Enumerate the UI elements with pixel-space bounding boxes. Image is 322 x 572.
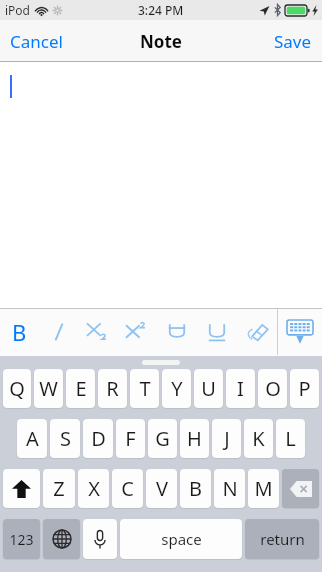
staticText: W xyxy=(39,375,58,402)
button[interactable]: 123 xyxy=(3,519,40,559)
button[interactable]: Q xyxy=(3,369,31,408)
button[interactable]: T xyxy=(130,369,159,408)
staticText: O xyxy=(265,375,281,402)
staticText: iPod xyxy=(5,2,30,18)
staticText: L xyxy=(285,425,296,452)
staticText: S xyxy=(60,425,71,452)
staticText: C xyxy=(121,475,134,502)
button[interactable]: B xyxy=(180,469,211,508)
staticText: F xyxy=(125,425,136,452)
staticText: G xyxy=(155,425,170,452)
button[interactable]: E xyxy=(66,369,95,408)
button[interactable]: Strikethrough xyxy=(157,308,197,356)
button[interactable]: O xyxy=(258,369,287,408)
button[interactable]: K xyxy=(244,419,273,458)
button[interactable]: Bold xyxy=(0,308,39,356)
staticText: B xyxy=(189,475,202,502)
staticText: H xyxy=(187,425,202,452)
staticText: K xyxy=(252,425,265,452)
button[interactable]: J xyxy=(212,419,241,458)
button[interactable]: M xyxy=(248,469,279,508)
staticText: D xyxy=(91,425,106,452)
button[interactable]: Dictate xyxy=(83,519,117,559)
button[interactable]: Erase xyxy=(237,308,277,356)
staticText: Z xyxy=(53,475,65,502)
staticText: 123 xyxy=(9,530,34,549)
button[interactable]: I xyxy=(226,369,255,408)
button[interactable]: P xyxy=(290,369,319,408)
button[interactable]: Save xyxy=(264,22,322,61)
button[interactable]: X xyxy=(78,469,109,508)
button[interactable]: Underline xyxy=(197,308,237,356)
button[interactable]: N xyxy=(214,469,245,508)
button[interactable]: D xyxy=(83,419,113,458)
button[interactable]: Cancel xyxy=(0,22,73,61)
button[interactable]: S xyxy=(50,419,80,458)
button[interactable]: W xyxy=(34,369,63,408)
button[interactable]: Italic xyxy=(39,308,78,356)
button[interactable]: Backspace xyxy=(282,469,319,508)
button[interactable]: R xyxy=(98,369,127,408)
staticText: E xyxy=(75,375,87,402)
button[interactable]: U xyxy=(194,369,223,408)
staticText: J xyxy=(224,425,230,452)
staticText: B xyxy=(12,317,27,347)
staticText: Note xyxy=(140,30,182,53)
button[interactable]: Hide keyboard xyxy=(278,310,322,354)
button[interactable]: return xyxy=(245,519,319,559)
staticText: A xyxy=(26,425,39,452)
staticText: Q xyxy=(9,375,25,402)
staticText: R xyxy=(106,375,119,402)
button[interactable]: H xyxy=(180,419,209,458)
button[interactable]: F xyxy=(116,419,145,458)
staticText: Cancel xyxy=(10,30,63,53)
staticText: X xyxy=(88,475,100,502)
staticText: Save xyxy=(274,30,312,53)
staticText: N xyxy=(222,475,238,502)
staticText: V xyxy=(156,475,168,502)
button[interactable]: Z xyxy=(43,469,75,508)
staticText: U xyxy=(201,375,216,402)
button[interactable]: space xyxy=(120,519,242,559)
button[interactable]: Superscript xyxy=(117,308,157,356)
staticText: return xyxy=(260,529,305,549)
button[interactable]: A xyxy=(17,419,47,458)
staticText: M xyxy=(254,475,273,502)
button[interactable]: Y xyxy=(162,369,191,408)
button[interactable]: Change keyboard xyxy=(43,519,80,559)
staticText: P xyxy=(298,375,311,402)
staticText: 3:24 PM xyxy=(138,2,184,18)
button[interactable]: G xyxy=(148,419,177,458)
staticText: space xyxy=(161,529,202,549)
staticText: Y xyxy=(171,375,183,402)
button[interactable]: C xyxy=(112,469,143,508)
staticText: T xyxy=(139,375,151,402)
button[interactable]: Shift xyxy=(3,469,40,508)
button[interactable]: Subscript xyxy=(78,308,117,356)
button[interactable]: V xyxy=(146,469,177,508)
staticText: I xyxy=(237,375,244,402)
button[interactable]: L xyxy=(276,419,305,458)
